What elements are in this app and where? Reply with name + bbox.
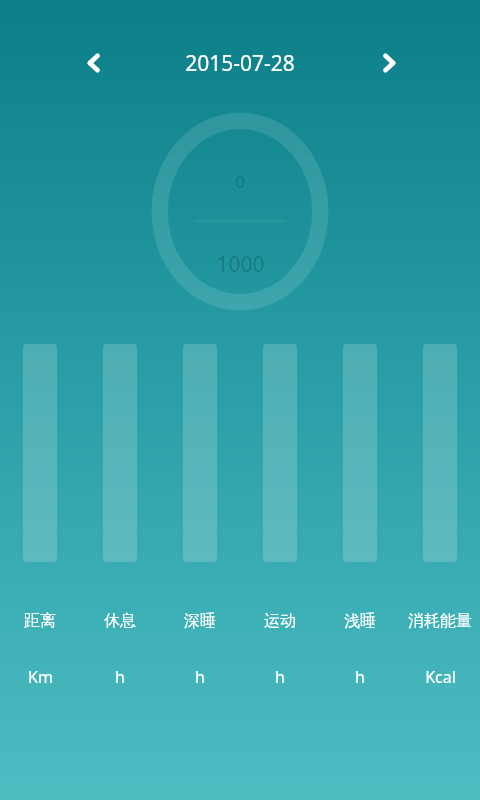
staticText: 浅睡: [344, 611, 376, 631]
button[interactable]: 2015-07-28: [140, 39, 340, 87]
button[interactable]: Step goal progress: [146, 107, 334, 316]
staticText: 深睡: [184, 611, 216, 631]
button[interactable]: h: [80, 662, 160, 692]
button[interactable]: 休息: [80, 606, 160, 636]
button[interactable]: [320, 344, 400, 562]
staticText: 休息: [104, 611, 136, 631]
button[interactable]: 浅睡: [320, 606, 400, 636]
button[interactable]: 运动: [240, 606, 320, 636]
staticText: 距离: [24, 611, 56, 631]
button[interactable]: h: [240, 662, 320, 692]
staticText: h: [195, 666, 205, 688]
button[interactable]: 距离: [0, 606, 80, 636]
button[interactable]: [160, 344, 240, 562]
button[interactable]: [0, 344, 80, 562]
button[interactable]: h: [160, 662, 240, 692]
staticText: h: [275, 666, 285, 688]
staticText: 1000: [216, 250, 265, 279]
button[interactable]: 深睡: [160, 606, 240, 636]
button[interactable]: Kcal: [400, 662, 480, 692]
button[interactable]: [240, 344, 320, 562]
button[interactable]: Previous day: [71, 39, 119, 87]
button[interactable]: 消耗能量: [400, 606, 480, 636]
staticText: Km: [28, 666, 53, 688]
staticText: 2015-07-28: [185, 49, 295, 78]
button[interactable]: Next day: [364, 39, 412, 87]
staticText: 0: [235, 170, 245, 193]
staticText: 消耗能量: [408, 611, 472, 631]
staticText: h: [115, 666, 125, 688]
staticText: 运动: [264, 611, 296, 631]
button[interactable]: [80, 344, 160, 562]
staticText: h: [355, 666, 365, 688]
button[interactable]: [400, 344, 480, 562]
button[interactable]: h: [320, 662, 400, 692]
staticText: Kcal: [425, 666, 456, 688]
button[interactable]: Km: [0, 662, 80, 692]
